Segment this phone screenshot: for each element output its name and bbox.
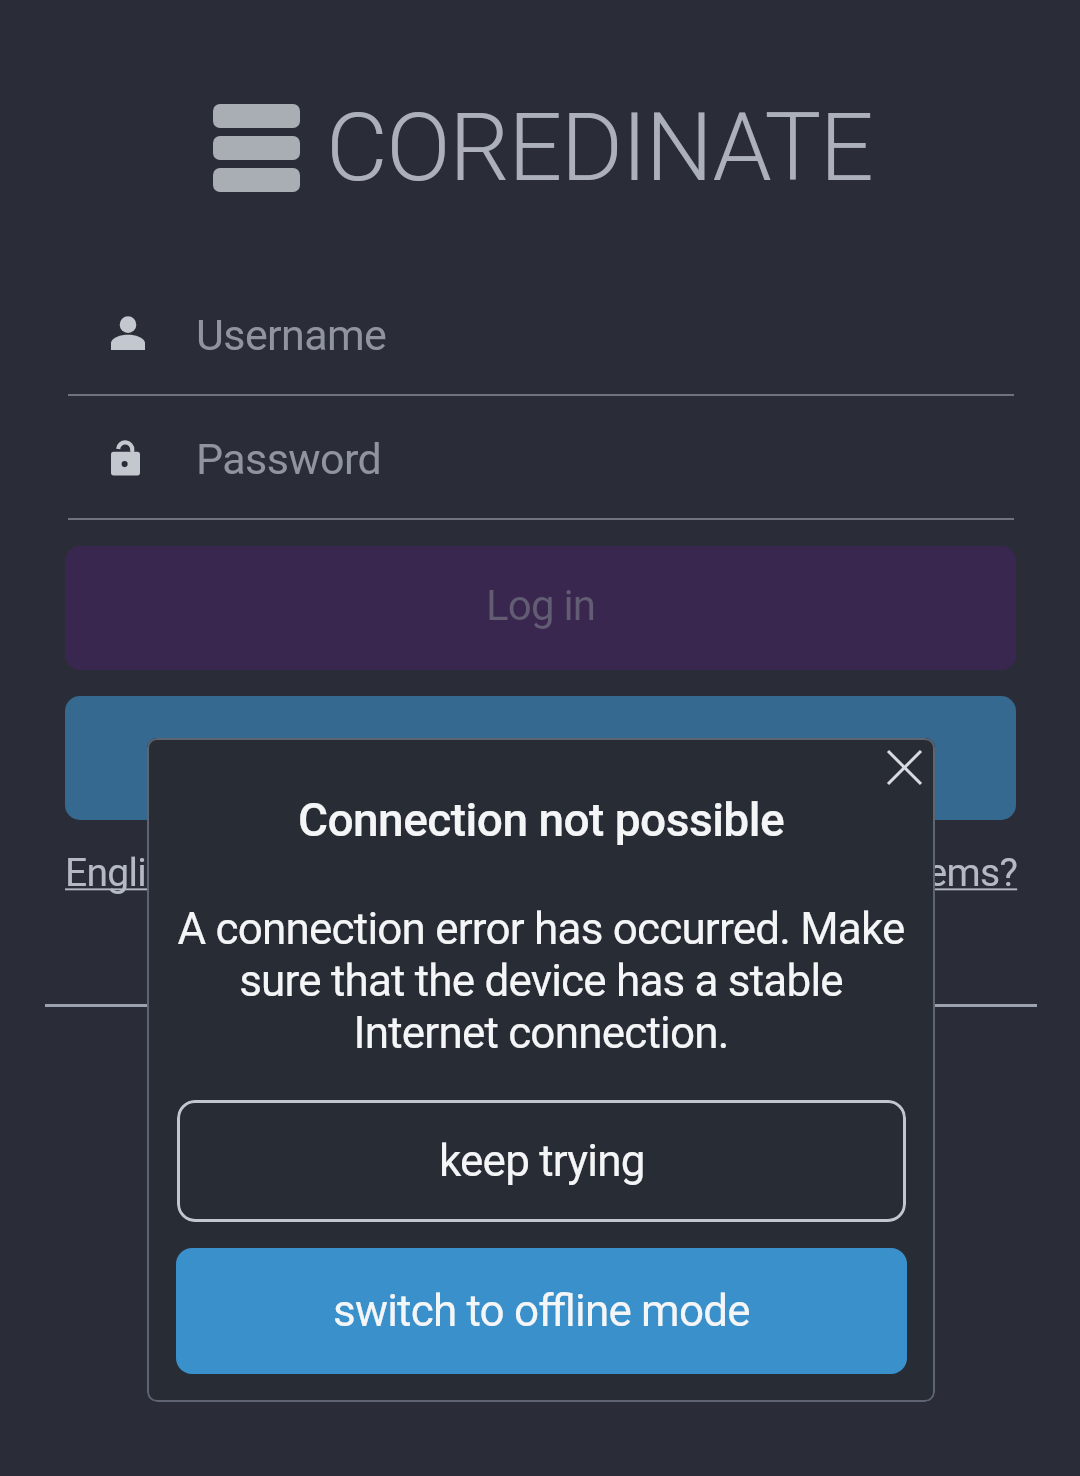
staticText: COREDINATE — [326, 92, 873, 203]
button[interactable]: Log in — [65, 546, 1016, 670]
staticText: keep trying — [439, 1135, 645, 1187]
button[interactable]: switch to offline mode — [176, 1248, 907, 1374]
staticText: Connection not possible — [147, 793, 935, 847]
button[interactable]: keep trying — [177, 1100, 906, 1222]
staticText: Password — [196, 434, 382, 484]
button[interactable]: Offline mode — [65, 696, 1016, 820]
staticText: switch to offline mode — [333, 1285, 750, 1337]
button[interactable]: English — [65, 850, 187, 896]
button[interactable]: Close — [859, 738, 935, 794]
button[interactable]: Login problems? — [740, 850, 1018, 896]
staticText: A connection error has occurred. Make su… — [167, 903, 915, 1059]
staticText: Log in — [486, 581, 596, 630]
staticText: Username — [196, 310, 387, 360]
